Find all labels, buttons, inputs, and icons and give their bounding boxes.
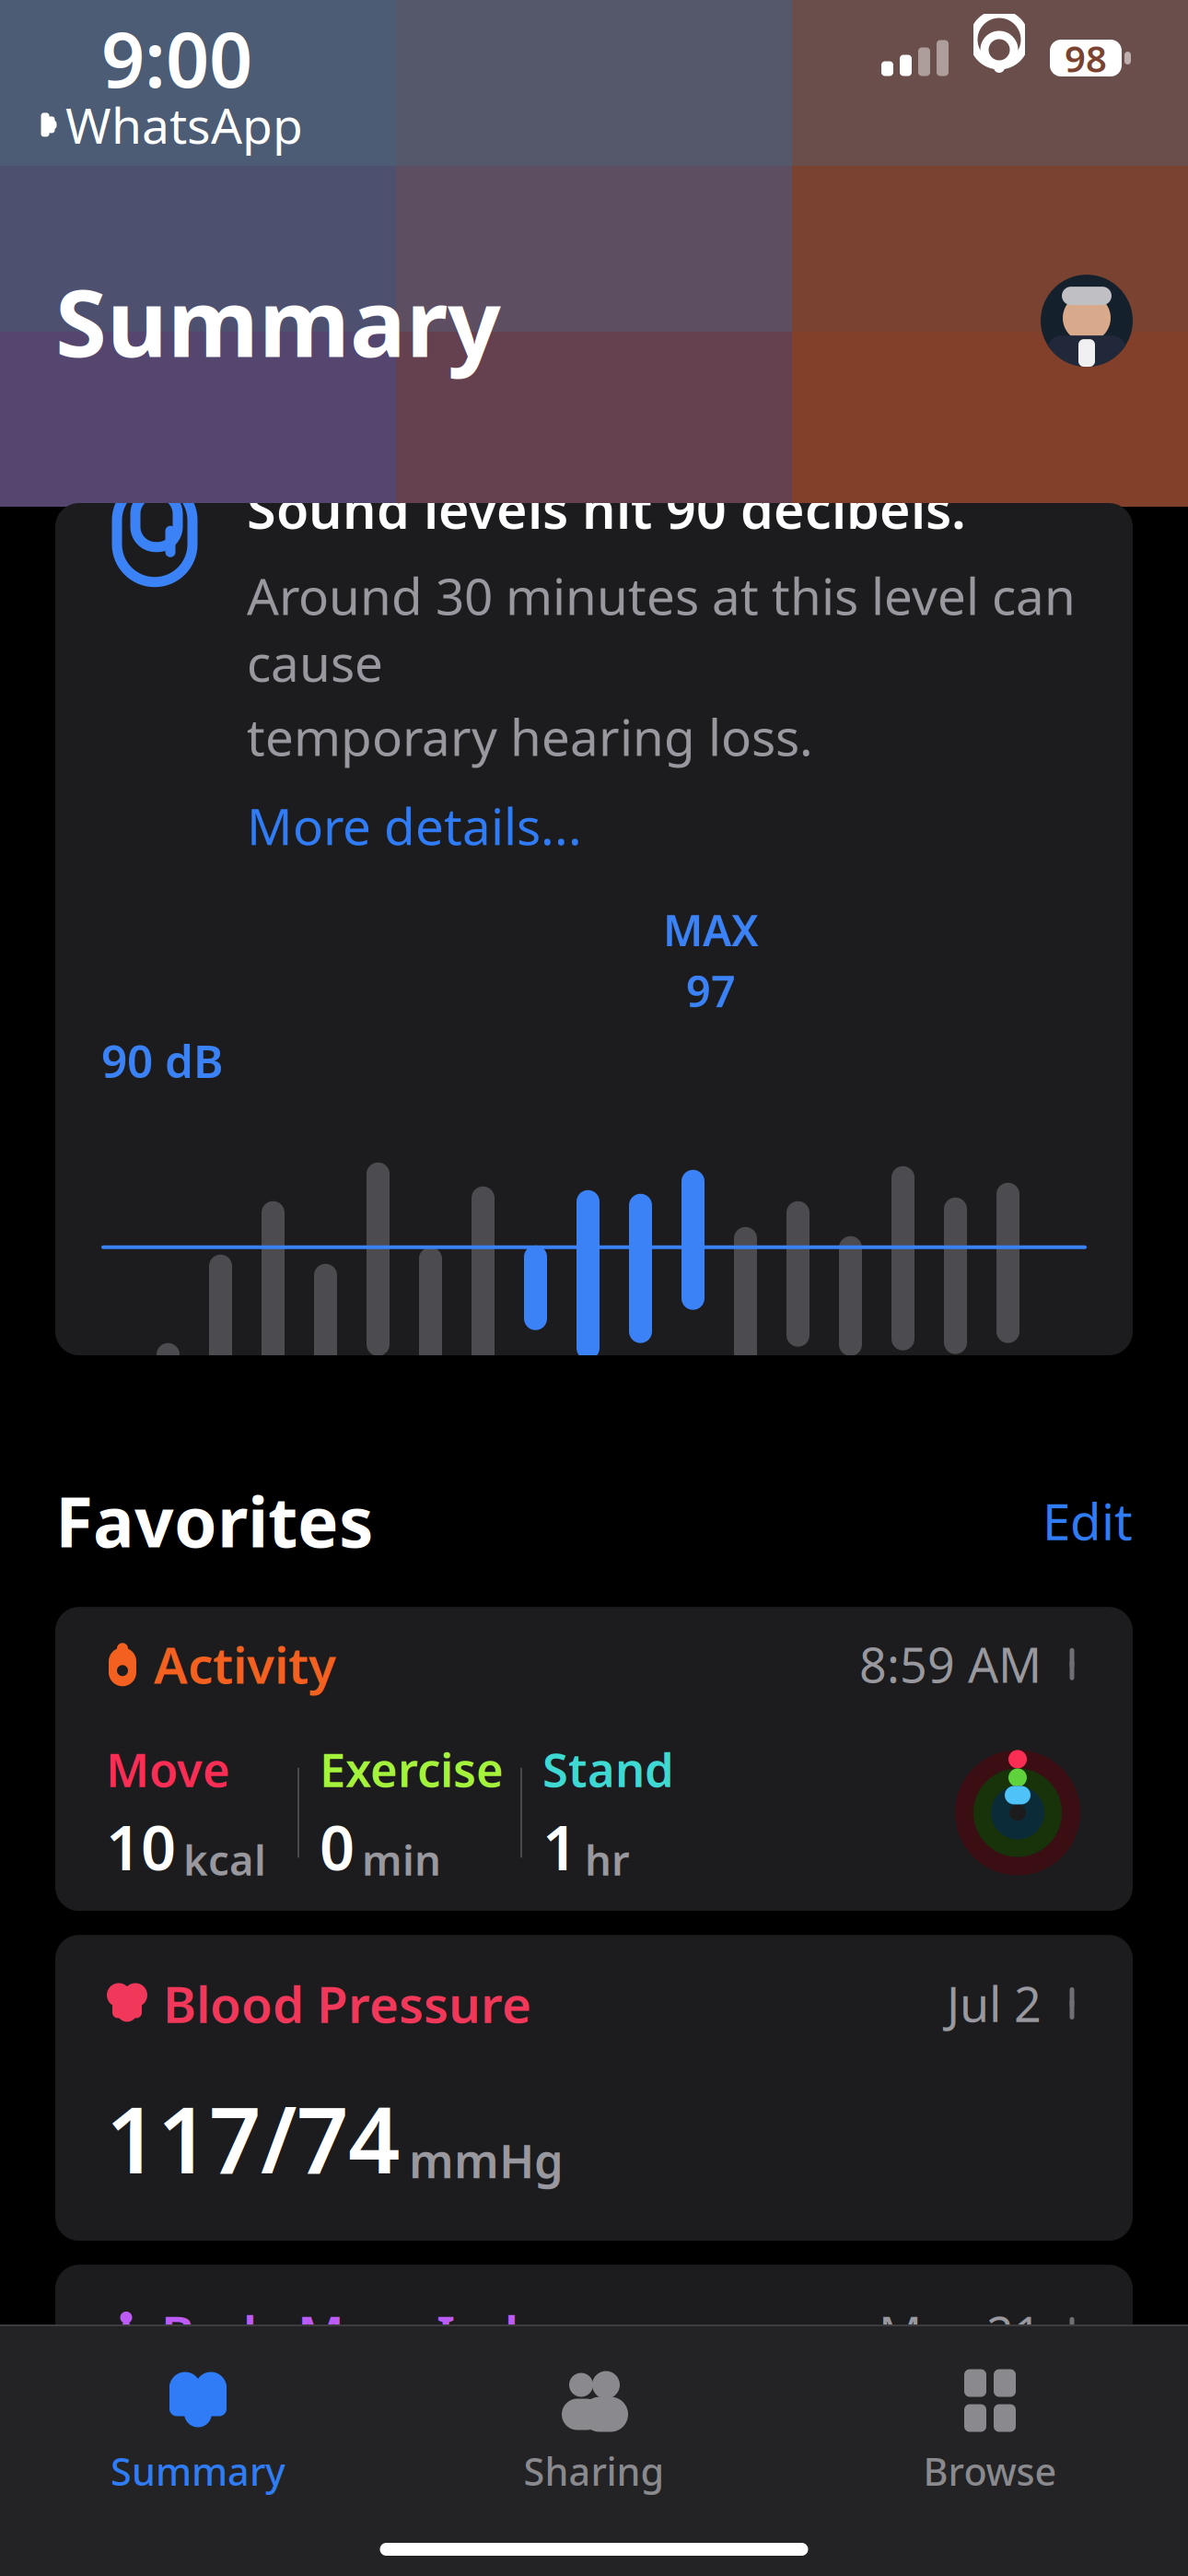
staticText: kcal: [183, 1832, 266, 1887]
staticText: 0: [320, 1806, 355, 1887]
staticText: NOISE NOTIFICATIONS: [158, 357, 656, 416]
button[interactable]: Blood Pressure: [55, 1935, 1133, 2241]
staticText: Jul 2: [947, 1972, 1042, 2035]
button[interactable]: Browse: [792, 2363, 1188, 2501]
staticText: More details...: [247, 792, 582, 859]
staticText: Stand: [542, 1738, 674, 1800]
staticText: Edit: [1042, 1487, 1133, 1554]
staticText: Blood Pressure: [163, 1970, 531, 2037]
staticText: Sharing: [524, 2446, 664, 2496]
button[interactable]: Body Mass Index: [55, 2265, 1133, 2541]
staticText: Summary: [55, 259, 501, 383]
staticText: Favorites: [55, 1475, 373, 1566]
staticText: min: [362, 1832, 441, 1887]
button[interactable]: Activity: [55, 1607, 1133, 1911]
staticText: 9:00: [101, 7, 252, 109]
button[interactable]: Sharing: [396, 2363, 792, 2501]
staticText: WhatsApp: [65, 92, 303, 157]
staticText: 97: [686, 962, 736, 1019]
button[interactable]: Profile: [1041, 275, 1133, 367]
button[interactable]: WhatsApp: [33, 92, 303, 157]
staticText: 117/74: [106, 2078, 400, 2198]
staticText: Move: [106, 1738, 230, 1800]
staticText: 90 dB: [101, 1030, 224, 1091]
button[interactable]: More details...: [247, 792, 582, 859]
staticText: 98: [1065, 34, 1107, 82]
staticText: Activity: [154, 1631, 336, 1698]
staticText: 1: [542, 1806, 577, 1887]
staticText: May 21: [879, 2301, 1042, 2365]
button[interactable]: Summary: [0, 2363, 396, 2501]
staticText: Body Mass Index: [161, 2300, 576, 2367]
staticText: Summary: [111, 2446, 285, 2496]
staticText: temporary hearing loss.: [247, 703, 813, 770]
button[interactable]: Dismiss notification: [1048, 363, 1096, 411]
staticText: Around 30 minutes at this level can caus…: [247, 562, 1076, 696]
staticText: mmHg: [409, 2129, 564, 2191]
staticText: Exercise: [320, 1738, 504, 1800]
staticText: 10: [106, 1806, 176, 1887]
staticText: 8:59 AM: [859, 1632, 1042, 1696]
staticText: Browse: [923, 2446, 1057, 2496]
staticText: hr: [585, 1832, 630, 1887]
staticText: MAX: [663, 901, 759, 958]
button[interactable]: Edit: [1042, 1487, 1133, 1554]
staticText: Sound levels hit 90 decibels.: [247, 473, 966, 543]
